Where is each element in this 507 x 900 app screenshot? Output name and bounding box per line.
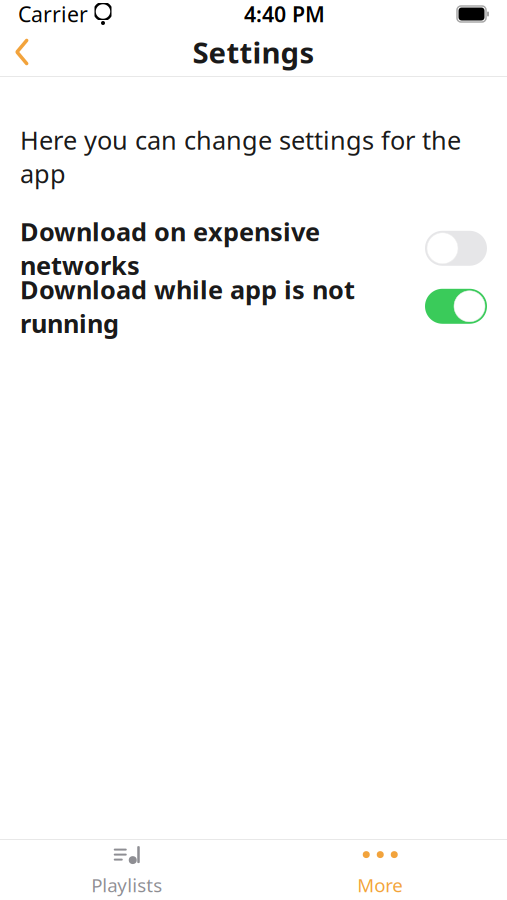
staticText: More — [357, 873, 403, 897]
button[interactable]: Playlists — [0, 841, 253, 899]
button[interactable]: Back — [0, 30, 44, 74]
button[interactable]: More — [253, 841, 507, 899]
staticText: 4:40 PM — [244, 0, 325, 28]
staticText: Download on expensive networks — [20, 215, 320, 282]
staticText: Download while app is not running — [20, 273, 355, 340]
staticText: Here you can change settings for the app — [20, 123, 461, 190]
button[interactable]: Download on expensive networks — [20, 230, 487, 266]
staticText: Playlists — [91, 873, 162, 897]
staticText: Carrier — [18, 0, 88, 28]
staticText: Settings — [192, 32, 314, 71]
button[interactable]: Download while app is not running — [20, 288, 487, 324]
